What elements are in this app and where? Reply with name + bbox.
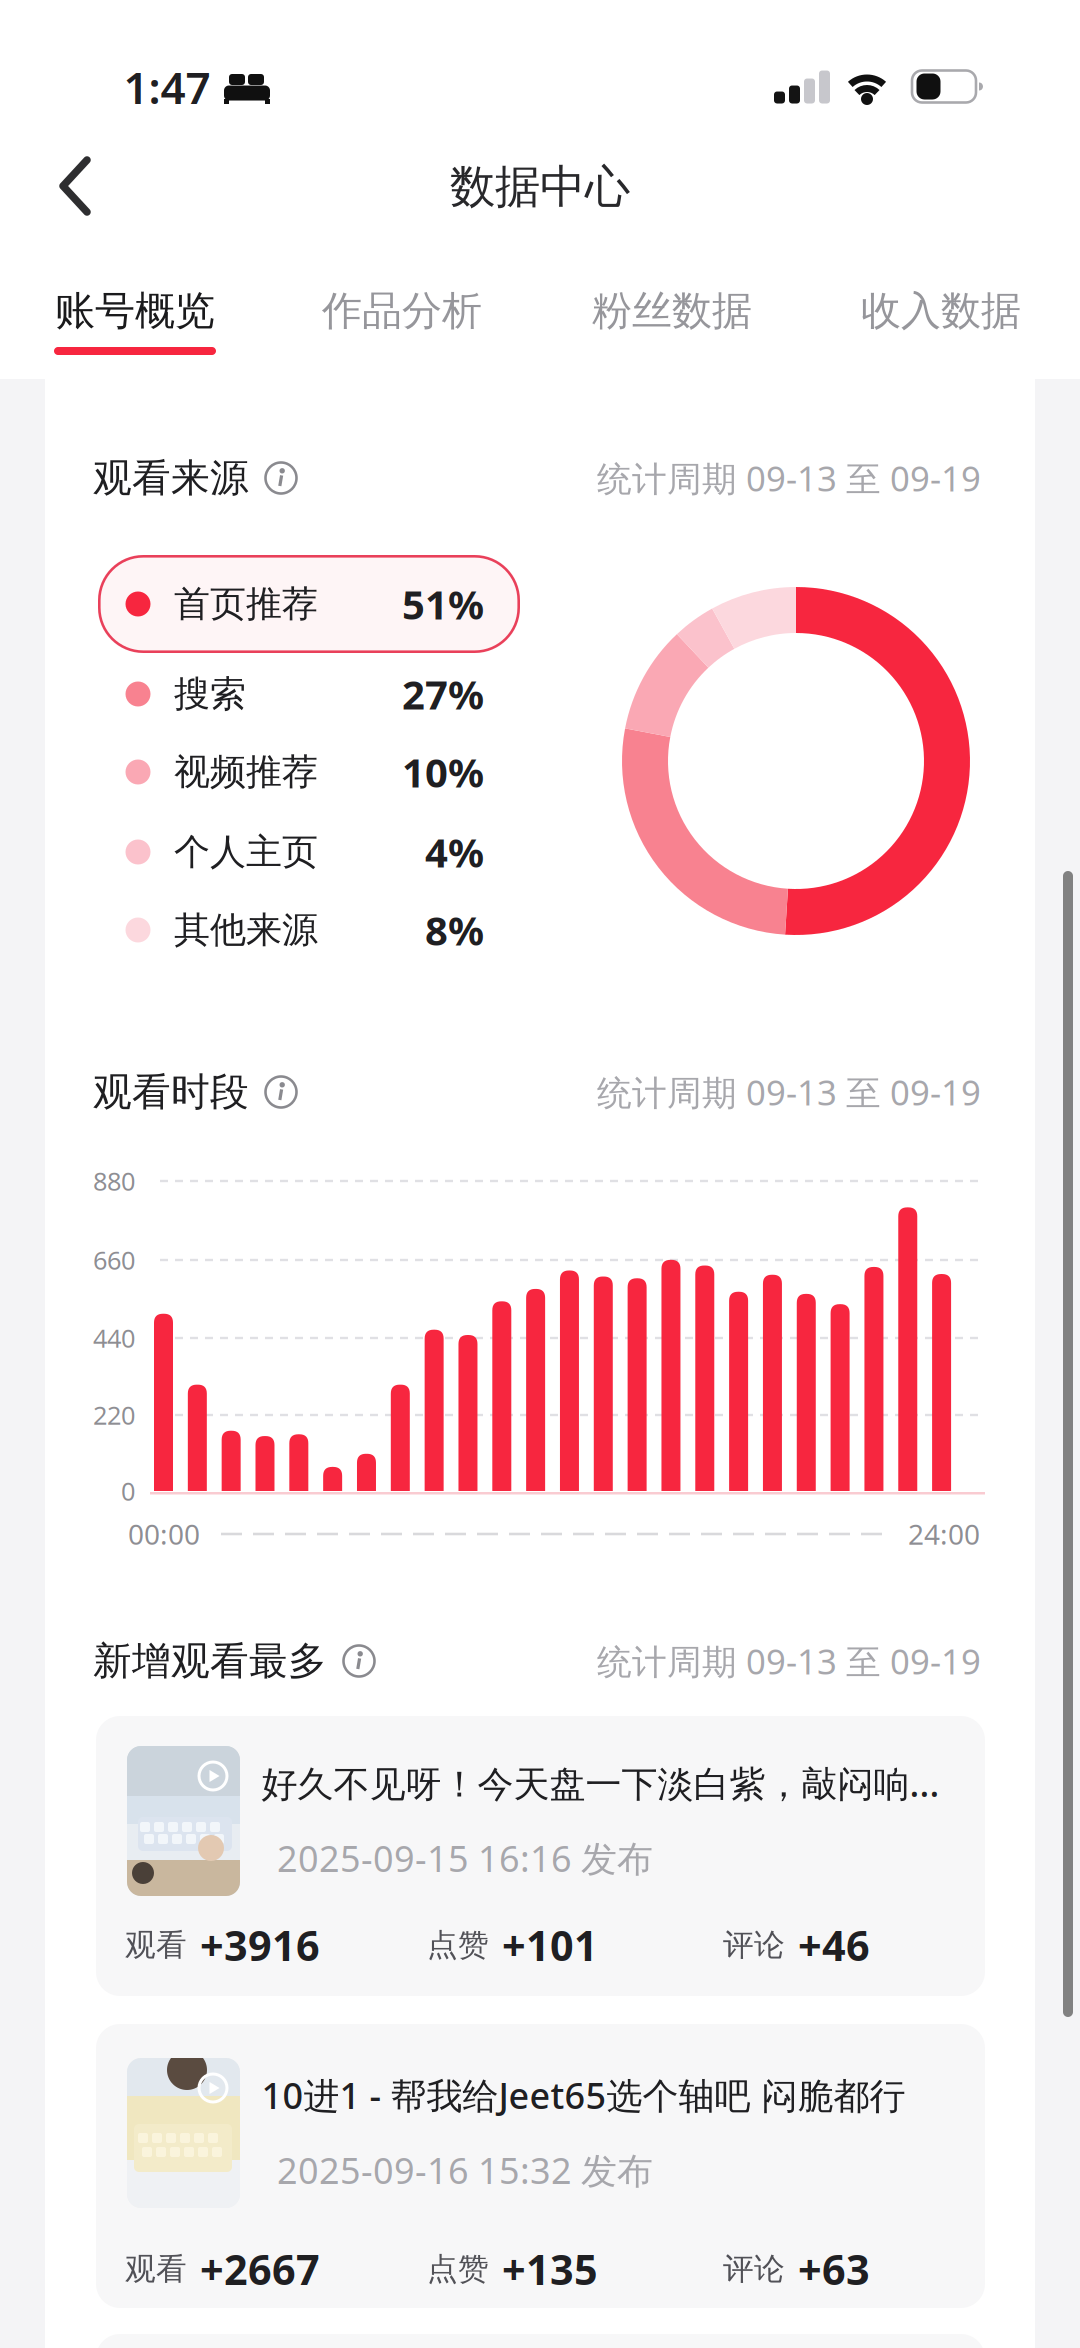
button[interactable]: 观看来源 <box>93 454 299 502</box>
staticText: 4% <box>425 825 484 878</box>
staticText: +3916 <box>200 1918 320 1972</box>
staticText: 27% <box>402 667 484 720</box>
staticText: 统计周期 09-13 至 09-19 <box>597 455 981 501</box>
button[interactable] <box>96 1716 985 1996</box>
staticText: 观看 <box>125 2250 187 2288</box>
staticText: 作品分析 <box>322 286 482 335</box>
staticText: 粉丝数据 <box>592 286 752 335</box>
staticText: 个人主页 <box>174 830 318 874</box>
staticText: 数据中心 <box>450 159 630 215</box>
staticText: 收入数据 <box>861 286 1021 335</box>
staticText: +2667 <box>200 2242 320 2296</box>
staticText: 51% <box>402 577 484 630</box>
staticText: 8% <box>425 903 484 956</box>
staticText: +135 <box>502 2242 598 2296</box>
staticText: 评论 <box>723 1926 785 1964</box>
button[interactable]: 作品分析 <box>292 276 512 346</box>
staticText: 00:00 <box>128 1515 200 1553</box>
staticText: 好久不见呀！今天盘一下淡白紫，敲闷响... <box>261 1759 939 1807</box>
staticText: 首页推荐 <box>174 582 318 626</box>
staticText: 880 <box>93 1164 135 1198</box>
staticText: 24:00 <box>908 1515 980 1553</box>
button[interactable]: 搜索 <box>98 655 520 733</box>
button[interactable] <box>98 555 520 653</box>
button[interactable]: 观看时段 <box>93 1068 299 1116</box>
staticText: 点赞 <box>427 1926 489 1964</box>
button[interactable]: 收入数据 <box>831 276 1051 346</box>
staticText: 2025-09-16 15:32 发布 <box>277 2146 653 2194</box>
staticText: 观看时段 <box>93 1068 249 1116</box>
button[interactable] <box>42 146 112 226</box>
staticText: 440 <box>93 1321 135 1355</box>
staticText: 统计周期 09-13 至 09-19 <box>597 1069 981 1115</box>
staticText: 视频推荐 <box>174 750 318 794</box>
staticText: 评论 <box>723 2250 785 2288</box>
staticText: 0 <box>121 1474 135 1508</box>
staticText: 660 <box>93 1243 135 1277</box>
staticText: 观看 <box>125 1926 187 1964</box>
button[interactable]: 账号概览 <box>25 276 245 346</box>
staticText: 新增观看最多 <box>93 1637 327 1685</box>
button[interactable]: 粉丝数据 <box>562 276 782 346</box>
staticText: 2025-09-15 16:16 发布 <box>277 1834 653 1882</box>
staticText: +46 <box>798 1918 870 1972</box>
staticText: 10% <box>402 745 484 798</box>
button[interactable]: 首页推荐 <box>98 565 520 643</box>
staticText: 账号概览 <box>55 286 215 335</box>
staticText: +101 <box>502 1918 598 1972</box>
staticText: 10进1 - 帮我给Jeet65选个轴吧 闷脆都行 <box>261 2071 905 2119</box>
button[interactable]: 个人主页 <box>98 813 520 891</box>
staticText: 搜索 <box>174 672 246 716</box>
button[interactable]: 视频推荐 <box>98 733 520 811</box>
button[interactable]: 其他来源 <box>98 891 520 969</box>
staticText: 其他来源 <box>174 908 318 952</box>
button[interactable] <box>96 2024 985 2308</box>
staticText: 统计周期 09-13 至 09-19 <box>597 1638 981 1684</box>
button[interactable]: 新增观看最多 <box>93 1637 377 1685</box>
staticText: 1:47 <box>123 58 210 116</box>
staticText: 220 <box>93 1398 135 1432</box>
staticText: 观看来源 <box>93 454 249 502</box>
staticText: +63 <box>798 2242 870 2296</box>
staticText: 点赞 <box>427 2250 489 2288</box>
